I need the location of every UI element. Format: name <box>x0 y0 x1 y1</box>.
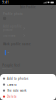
staticText: Camera <box>7 83 16 86</box>
staticText: The side work <box>7 89 26 92</box>
staticText: Edit Profile <box>20 5 36 9</box>
button[interactable]: The side work <box>0 88 56 94</box>
staticText: 9:41 <box>2 1 9 4</box>
button[interactable]: Delete <box>0 94 56 100</box>
staticText: Username <box>3 34 16 37</box>
button[interactable]: Camera <box>0 82 56 88</box>
staticText: People feel <box>2 64 20 67</box>
staticText: Add to photos <box>7 77 28 80</box>
staticText: Delete <box>7 95 17 98</box>
button[interactable]: Add to photos <box>0 76 56 82</box>
staticText: Work profile name <box>3 42 31 46</box>
staticText: Profile photo <box>3 12 23 16</box>
